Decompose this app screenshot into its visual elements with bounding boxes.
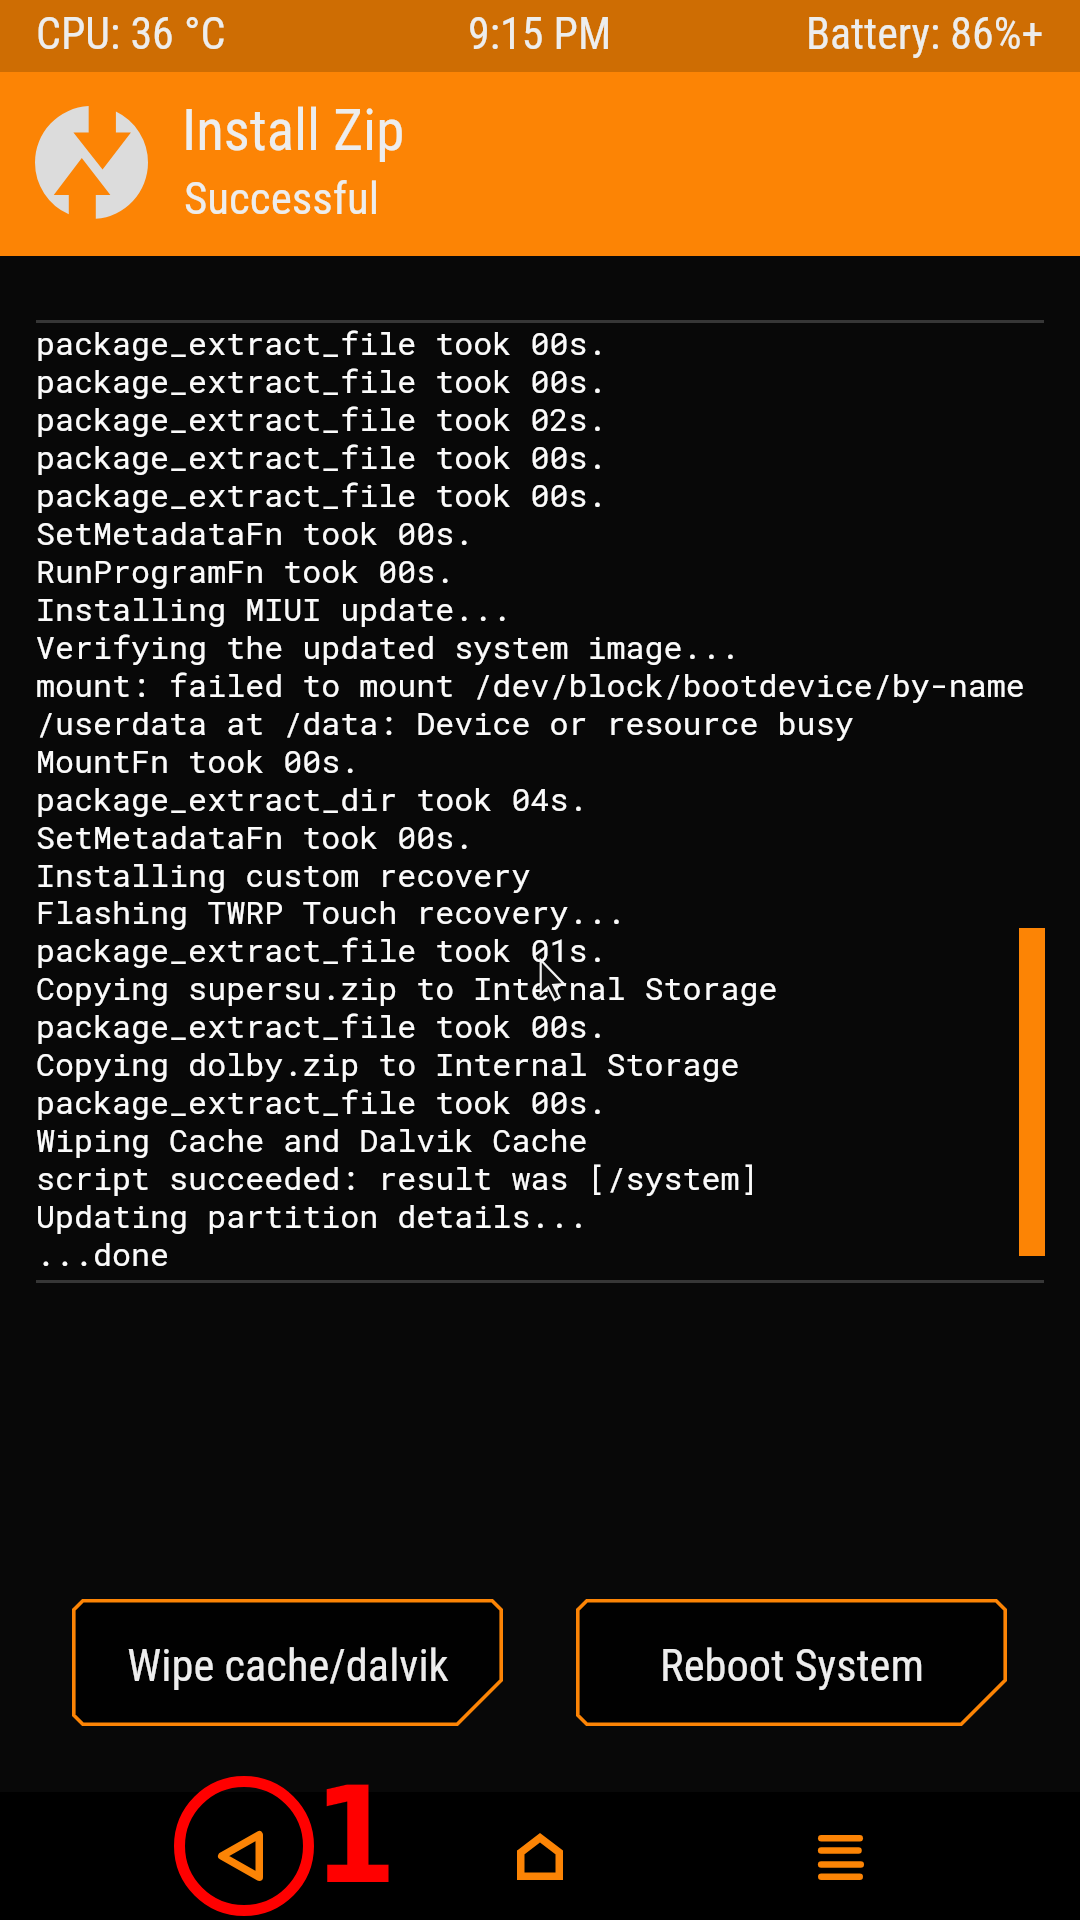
staticText: Wiping Cache and Dalvik Cache [36, 1122, 588, 1160]
staticText: Copying supersu.zip to Internal Storage [36, 970, 778, 1008]
staticText: CPU: 36 °C [36, 8, 226, 60]
staticText: Reboot System [660, 1640, 924, 1692]
staticText: SetMetadataFn took 00s. [36, 819, 474, 857]
staticText: Battery: 86%+ [806, 8, 1044, 60]
staticText: ...done [36, 1236, 170, 1274]
button[interactable]: Install Zip - Successful [0, 72, 1080, 256]
staticText: MountFn took 00s. [36, 743, 360, 781]
staticText: Installing MIUI update... [36, 591, 512, 629]
staticText: /userdata at /data: Device or resource b… [36, 705, 854, 743]
staticText: Successful [184, 172, 380, 225]
staticText: Install Zip [182, 97, 405, 164]
staticText: Verifying the updated system image... [36, 629, 740, 667]
button[interactable]: Wipe cache/dalvik [72, 1599, 503, 1726]
staticText: package_extract_file took 00s. [36, 363, 607, 401]
staticText: package_extract_dir took 04s. [36, 781, 588, 819]
staticText: mount: failed to mount /dev/block/bootde… [36, 667, 1025, 705]
staticText: 1 [313, 1758, 397, 1914]
staticText: package_extract_file took 00s. [36, 1008, 607, 1046]
staticText: package_extract_file took 00s. [36, 325, 607, 363]
staticText: package_extract_file took 01s. [36, 932, 607, 970]
staticText: 9:15 PM [468, 8, 612, 60]
staticText: SetMetadataFn took 00s. [36, 515, 474, 553]
staticText: Wipe cache/dalvik [127, 1640, 449, 1692]
staticText: package_extract_file took 00s. [36, 1084, 607, 1122]
staticText: RunProgramFn took 00s. [36, 553, 455, 591]
button[interactable]: Menu [776, 1792, 904, 1920]
staticText: package_extract_file took 00s. [36, 439, 607, 477]
staticText: Copying dolby.zip to Internal Storage [36, 1046, 740, 1084]
button[interactable]: Reboot System [576, 1599, 1007, 1726]
staticText: package_extract_file took 02s. [36, 401, 607, 439]
button[interactable]: Installation log [0, 256, 1080, 1586]
staticText: script succeeded: result was [/system] [36, 1160, 759, 1198]
staticText: Updating partition details... [36, 1198, 588, 1236]
button[interactable]: Home [476, 1792, 604, 1920]
button[interactable]: Back [180, 1792, 308, 1920]
staticText: Flashing TWRP Touch recovery... [36, 894, 626, 932]
staticText: package_extract_file took 00s. [36, 477, 607, 515]
staticText: Installing custom recovery [36, 857, 531, 895]
